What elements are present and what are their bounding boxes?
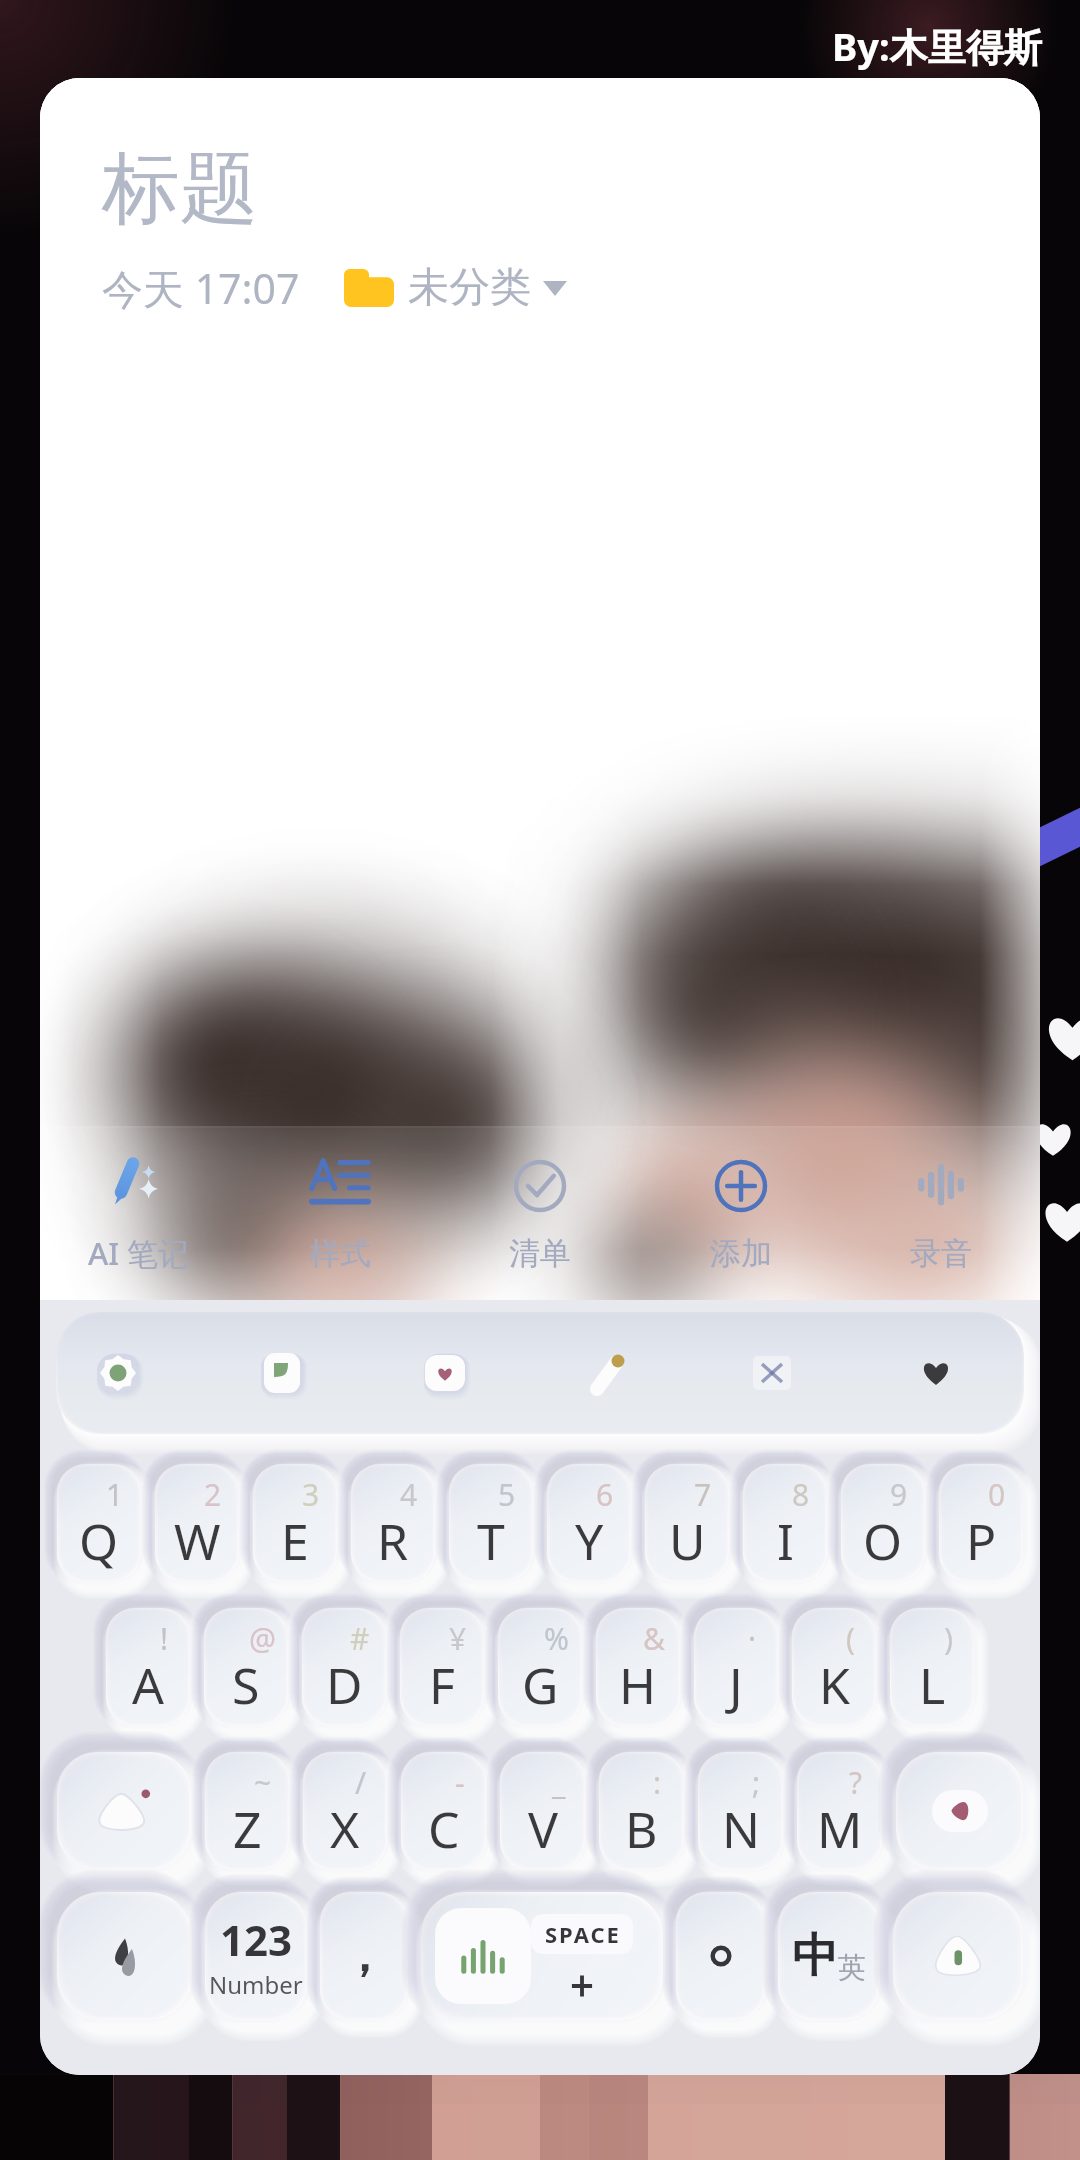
- button[interactable]: 添加: [642, 1144, 840, 1285]
- staticText: 123: [220, 1911, 293, 1968]
- staticText: 5: [498, 1474, 516, 1515]
- staticText: -: [455, 1762, 465, 1803]
- button[interactable]: 6: [547, 1464, 631, 1582]
- staticText: R: [377, 1507, 409, 1575]
- staticText: #: [350, 1618, 370, 1659]
- staticText: 4: [400, 1474, 418, 1515]
- button[interactable]: ·: [694, 1608, 778, 1726]
- staticText: ·: [748, 1618, 757, 1659]
- staticText: U: [669, 1507, 706, 1575]
- staticText: O: [863, 1507, 903, 1575]
- staticText: 添加: [710, 1234, 772, 1273]
- staticText: 2: [204, 1474, 222, 1515]
- staticText: C: [428, 1795, 460, 1863]
- staticText: ，: [342, 1929, 386, 1984]
- staticText: Number: [209, 1968, 303, 2001]
- button[interactable]: More: [900, 1337, 972, 1409]
- button[interactable]: _: [500, 1752, 585, 1870]
- button[interactable]: ¥: [400, 1608, 484, 1726]
- button[interactable]: Translate: [736, 1337, 808, 1409]
- staticText: D: [326, 1651, 363, 1719]
- staticText: %: [544, 1618, 569, 1659]
- button[interactable]: 1: [57, 1464, 141, 1582]
- button[interactable]: Space: [421, 1892, 663, 2020]
- button[interactable]: @: [204, 1608, 288, 1726]
- staticText: ¥: [449, 1618, 467, 1659]
- staticText: 未分类: [408, 262, 531, 314]
- staticText: ?: [849, 1762, 863, 1803]
- button[interactable]: ;: [698, 1752, 783, 1870]
- staticText: 样式: [309, 1234, 371, 1273]
- staticText: By:木里得斯: [832, 20, 1042, 72]
- button[interactable]: Delete: [896, 1752, 1023, 1870]
- staticText: F: [429, 1651, 455, 1719]
- button[interactable]: Emoji: [57, 1892, 192, 2020]
- staticText: 清单: [509, 1234, 571, 1273]
- button[interactable]: &: [596, 1608, 680, 1726]
- staticText: J: [729, 1651, 743, 1719]
- staticText: AI 笔记: [88, 1232, 190, 1274]
- staticText: 1: [106, 1474, 124, 1515]
- button[interactable]: (: [792, 1608, 876, 1726]
- staticText: !: [160, 1618, 169, 1659]
- button[interactable]: 样式: [241, 1144, 439, 1285]
- button[interactable]: ~: [205, 1752, 289, 1870]
- button[interactable]: Sticker: [82, 1337, 154, 1409]
- staticText: V: [528, 1795, 558, 1863]
- button[interactable]: !: [106, 1608, 190, 1726]
- staticText: 8: [792, 1474, 810, 1515]
- button[interactable]: 2: [155, 1464, 239, 1582]
- staticText: W: [174, 1507, 221, 1575]
- staticText: @: [249, 1618, 276, 1659]
- button[interactable]: 9: [841, 1464, 925, 1582]
- staticText: 9: [890, 1474, 908, 1515]
- staticText: ;: [752, 1762, 761, 1803]
- staticText: B: [625, 1795, 658, 1863]
- staticText: X: [330, 1795, 360, 1863]
- button[interactable]: Theme: [573, 1337, 645, 1409]
- button[interactable]: Enter: [893, 1892, 1023, 2020]
- staticText: L: [919, 1651, 946, 1719]
- button[interactable]: -: [401, 1752, 486, 1870]
- staticText: SPACE: [545, 1919, 619, 1949]
- button[interactable]: Period: [676, 1892, 765, 2020]
- staticText: 中: [792, 1927, 838, 1985]
- button[interactable]: 3: [253, 1464, 337, 1582]
- button[interactable]: 0: [939, 1464, 1023, 1582]
- staticText: 3: [302, 1474, 320, 1515]
- staticText: 英: [838, 1950, 866, 1985]
- button[interactable]: %: [498, 1608, 582, 1726]
- button[interactable]: 8: [743, 1464, 827, 1582]
- staticText: ): [944, 1618, 953, 1659]
- staticText: ~: [254, 1762, 272, 1803]
- staticText: E: [281, 1507, 309, 1575]
- button[interactable]: 录音: [842, 1144, 1040, 1285]
- staticText: A: [132, 1651, 164, 1719]
- staticText: I: [777, 1507, 794, 1575]
- button[interactable]: Shift: [57, 1752, 191, 1870]
- button[interactable]: #: [302, 1608, 386, 1726]
- button[interactable]: Clipboard: [246, 1337, 318, 1409]
- button[interactable]: 4: [351, 1464, 435, 1582]
- button[interactable]: ): [890, 1608, 974, 1726]
- staticText: /: [355, 1762, 367, 1803]
- button[interactable]: Language: [778, 1892, 880, 2020]
- staticText: :: [653, 1762, 662, 1803]
- staticText: M: [817, 1795, 863, 1863]
- button[interactable]: 清单: [441, 1144, 639, 1285]
- button[interactable]: Comma: [320, 1892, 408, 2020]
- button[interactable]: AI 笔记: [40, 1142, 238, 1286]
- button[interactable]: ?: [797, 1752, 882, 1870]
- button[interactable]: 5: [449, 1464, 533, 1582]
- button[interactable]: 7: [645, 1464, 729, 1582]
- button[interactable]: Numbers: [205, 1892, 307, 2020]
- staticText: G: [522, 1651, 559, 1719]
- staticText: Q: [79, 1507, 119, 1575]
- staticText: Y: [575, 1507, 604, 1575]
- button[interactable]: :: [599, 1752, 684, 1870]
- button[interactable]: Favorite: [409, 1337, 481, 1409]
- button[interactable]: /: [303, 1752, 387, 1870]
- staticText: (: [846, 1618, 855, 1659]
- staticText: Z: [233, 1795, 262, 1863]
- staticText: 标题: [102, 140, 258, 238]
